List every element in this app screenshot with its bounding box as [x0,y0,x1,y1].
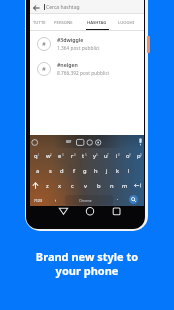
staticText: Brand new style to your phone [0,249,174,278]
staticText: s [49,167,52,175]
button[interactable]: g [79,163,90,178]
staticText: d [60,167,64,175]
button[interactable]: v [79,178,92,193]
button[interactable]: t [78,148,89,163]
staticText: Cerca hashtag [46,4,80,11]
button[interactable] [30,178,41,193]
staticText: v [84,182,87,190]
button[interactable]: d [56,163,68,178]
staticText: 8 [118,153,120,157]
staticText: HASHTAG [87,20,107,26]
staticText: m [122,182,128,190]
staticText: j [106,167,108,175]
staticText: g [83,167,87,175]
staticText: z [46,182,49,190]
button[interactable]: HASHTAG [82,14,112,31]
button[interactable]: n [105,178,118,193]
button[interactable]: x [53,178,66,193]
staticText: 3 [62,153,64,157]
button[interactable]: c [66,178,79,193]
button[interactable]: h [90,163,101,178]
button[interactable]: e [54,148,66,163]
button[interactable]: ?123 [34,198,43,203]
staticText: w [46,152,51,160]
staticText: , [55,196,57,203]
button[interactable]: a [32,163,44,178]
button[interactable]: s [44,163,56,178]
staticText: u [104,152,108,160]
staticText: r [71,152,74,160]
staticText: n [110,182,114,190]
button[interactable]: k [112,163,123,178]
staticText: i [116,152,118,160]
staticText: a [36,167,40,175]
staticText: f [73,167,75,175]
button[interactable]: j [101,163,112,178]
button[interactable]: o [122,148,133,163]
staticText: q [34,152,38,160]
button[interactable]: m [118,178,131,193]
staticText: PERSONE [54,20,73,26]
staticText: #3dwiggle [57,36,84,43]
button[interactable]: i [111,148,122,163]
staticText: 7 [107,153,109,157]
button[interactable]: y [89,148,100,163]
button[interactable] [65,195,113,205]
button[interactable]: p [133,148,144,163]
staticText: . [117,195,119,202]
button[interactable]: b [92,178,105,193]
staticText: x [58,182,62,190]
button[interactable]: r [66,148,78,163]
staticText: c [71,182,74,190]
staticText: y [93,152,96,160]
staticText: 2 [50,153,52,157]
button[interactable]: LUOGHI [114,14,138,31]
staticText: l [128,167,130,175]
staticText: GIF [66,140,72,144]
staticText: o [126,152,130,160]
staticText: 6 [96,153,98,157]
staticText: 0 [140,153,142,157]
button[interactable]: w [42,148,54,163]
button[interactable]: q [30,148,42,163]
button[interactable]: l [123,163,134,178]
staticText: k [116,167,120,175]
button[interactable]: Cerca hashtag [30,0,144,14]
button[interactable]: # [37,57,144,80]
staticText: t [82,152,85,160]
staticText: # [42,40,46,48]
staticText: 5 [85,153,87,157]
staticText: 1.364 post pubblici [57,45,100,52]
button[interactable]: # [37,32,144,55]
staticText: Chrome [79,198,92,203]
staticText: TUTTE [33,20,46,26]
button[interactable]: u [100,148,111,163]
staticText: 8.766.392 post pubblici [57,70,109,77]
staticText: e [58,152,62,160]
staticText: #nelgen [57,61,78,68]
staticText: h [94,167,98,175]
staticText: p [137,152,141,160]
button[interactable] [131,178,144,193]
staticText: 4 [74,153,76,157]
staticText: 1 [38,153,40,157]
button[interactable]: f [68,163,79,178]
staticText: LUOGHI [118,20,135,26]
button[interactable] [129,195,138,204]
staticText: # [42,65,46,73]
button[interactable]: TUTTE [30,14,48,31]
button[interactable]: PERSONE [51,14,75,31]
button[interactable]: z [41,178,53,193]
staticText: b [97,182,101,190]
staticText: 9 [129,153,131,157]
